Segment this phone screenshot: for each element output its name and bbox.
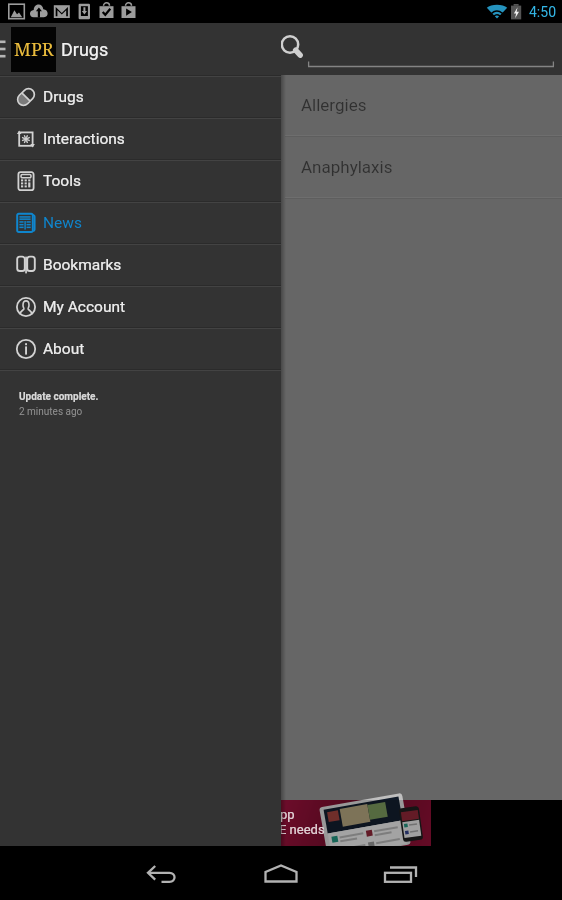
button[interactable]: Back bbox=[138, 846, 190, 900]
button[interactable]: Interactions bbox=[0, 119, 281, 159]
button[interactable]: Bookmarks bbox=[0, 245, 281, 285]
button[interactable]: My Account bbox=[0, 287, 281, 327]
button[interactable]: Open navigation drawer bbox=[0, 23, 281, 75]
staticText: Allergies bbox=[301, 95, 367, 115]
button[interactable]: About bbox=[0, 329, 281, 369]
staticText: Update complete. bbox=[19, 391, 99, 403]
staticText: Drugs bbox=[61, 39, 109, 60]
staticText: News bbox=[43, 214, 82, 232]
staticText: pp bbox=[280, 807, 295, 822]
staticText: E needs bbox=[279, 822, 325, 837]
staticText: 4:50 bbox=[529, 4, 556, 20]
staticText: My Account bbox=[43, 298, 126, 316]
button[interactable]: Drugs bbox=[0, 77, 281, 117]
staticText: Bookmarks bbox=[43, 256, 122, 274]
button[interactable]: Anaphylaxis bbox=[285, 137, 562, 199]
button[interactable]: News bbox=[0, 203, 281, 243]
staticText: Tools bbox=[43, 172, 81, 190]
button[interactable]: Home bbox=[256, 846, 308, 900]
button[interactable]: Search bbox=[276, 32, 310, 66]
staticText: Drugs bbox=[43, 88, 84, 106]
button[interactable]: Advertisement bbox=[279, 800, 431, 846]
staticText: About bbox=[43, 340, 85, 358]
button[interactable]: Recent apps bbox=[371, 846, 423, 900]
staticText: Anaphylaxis bbox=[301, 157, 393, 177]
button[interactable]: Allergies bbox=[285, 75, 562, 137]
staticText: 2 minutes ago bbox=[19, 406, 83, 418]
staticText: Interactions bbox=[43, 130, 125, 148]
staticText: MPR bbox=[14, 37, 54, 62]
button[interactable]: Tools bbox=[0, 161, 281, 201]
